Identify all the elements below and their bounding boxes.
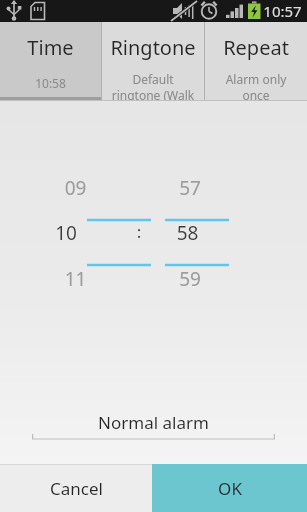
staticText: 58 <box>146 220 229 246</box>
button[interactable]: Cancel <box>0 464 152 512</box>
button[interactable]: Ringtone <box>102 22 204 100</box>
staticText: Cancel <box>50 477 103 500</box>
staticText: OK <box>218 477 242 500</box>
staticText: Default <box>102 71 204 87</box>
staticText: Time <box>27 34 74 61</box>
staticText: 11 <box>0 266 151 292</box>
staticText: ringtone (Walk <box>102 87 204 100</box>
staticText: : <box>132 220 146 243</box>
button[interactable]: Normal alarm <box>32 411 275 442</box>
staticText: Ringtone <box>110 34 196 61</box>
button[interactable]: OK <box>152 464 307 512</box>
staticText: 57 <box>151 175 229 201</box>
staticText: Alarm only <box>205 71 307 87</box>
staticText: 10:57 <box>263 1 302 21</box>
staticText: Repeat <box>223 34 289 61</box>
staticText: Normal alarm <box>32 411 275 434</box>
staticText: 10 <box>0 220 132 246</box>
staticText: 09 <box>0 175 151 201</box>
staticText: once <box>205 87 307 100</box>
button[interactable]: Repeat <box>205 22 307 100</box>
button[interactable]: Time <box>0 22 101 100</box>
staticText: 59 <box>151 266 229 292</box>
staticText: 10:58 <box>35 75 66 91</box>
